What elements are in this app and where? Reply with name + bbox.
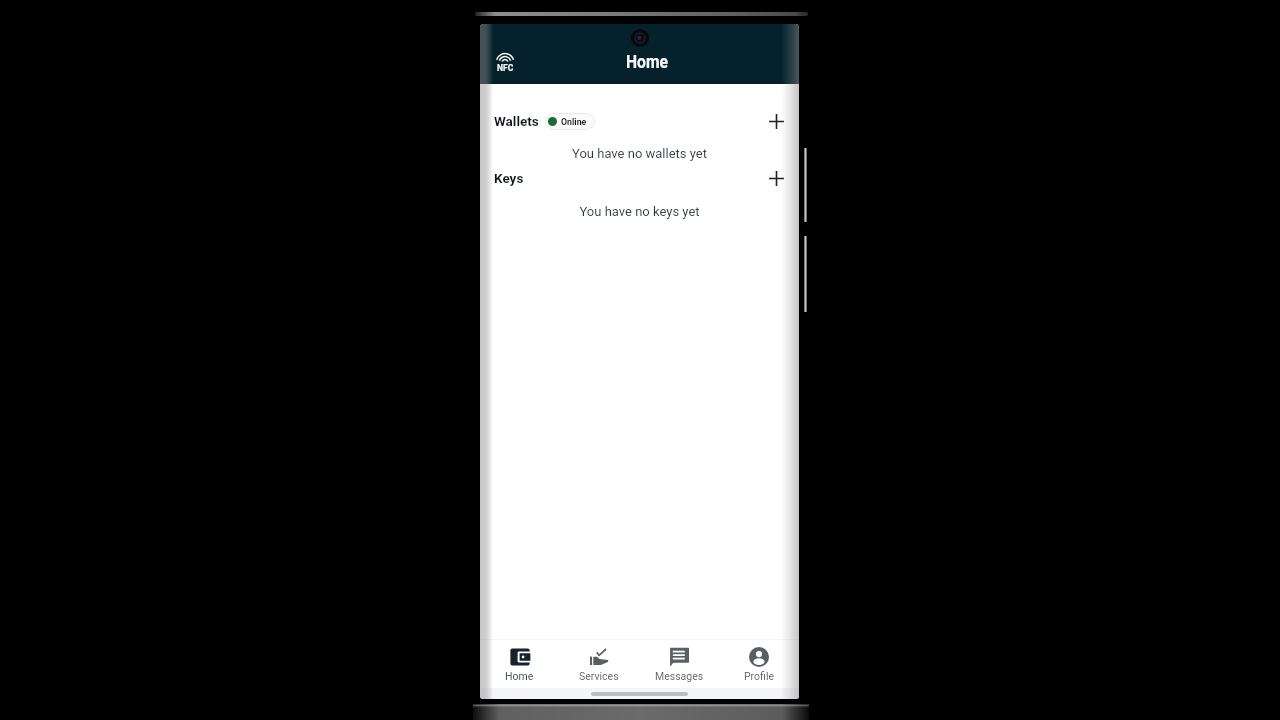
staticText: Profile [744,670,775,682]
button[interactable]: NFC enabled [496,51,524,73]
button[interactable]: Add Wallets [763,108,789,134]
staticText: You have no wallets yet [480,146,799,161]
button[interactable]: Home [480,640,559,688]
button[interactable]: Add Keys [763,165,789,191]
staticText: You have no keys yet [480,204,799,219]
staticText: Keys [494,170,524,186]
button[interactable]: Services [559,640,639,688]
staticText: NFC [497,63,514,73]
staticText: Home [505,670,534,682]
button[interactable]: Profile [719,640,799,688]
button[interactable]: Messages [639,640,719,688]
staticText: Online [561,117,587,127]
staticText: Home [626,51,669,72]
staticText: Wallets [494,113,539,129]
staticText: Services [579,670,619,682]
staticText: Messages [655,670,704,682]
